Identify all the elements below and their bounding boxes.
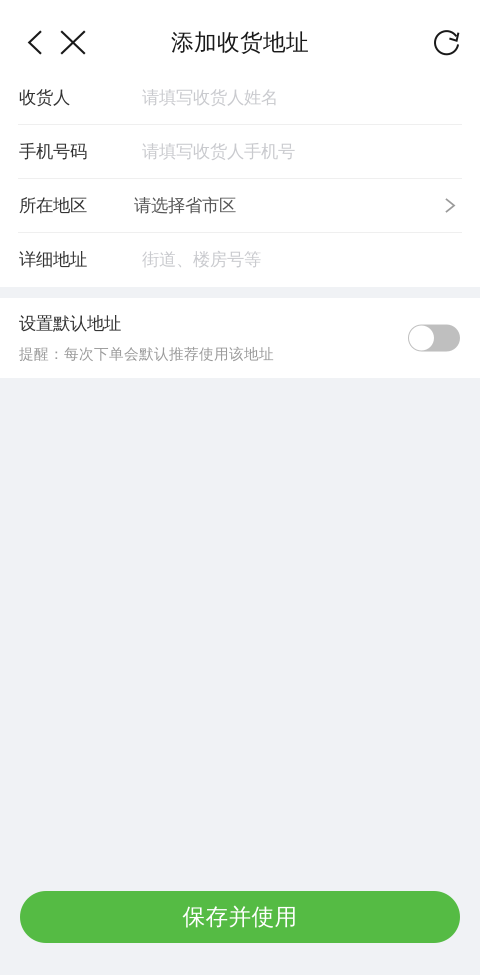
- button[interactable]: 保存并使用: [20, 891, 460, 943]
- staticText: 所在地区: [19, 195, 87, 216]
- button[interactable]: Close: [51, 17, 95, 67]
- button[interactable]: 所在地区: [0, 179, 480, 233]
- staticText: 请选择省市区: [134, 195, 236, 216]
- button[interactable]: 详细地址: [0, 233, 480, 287]
- staticText: 保存并使用: [182, 903, 297, 931]
- staticText: 设置默认地址: [19, 313, 121, 334]
- button[interactable]: 收货人: [0, 71, 480, 125]
- staticText: 添加收货地址: [171, 29, 309, 56]
- staticText: 请填写收货人手机号: [142, 141, 295, 162]
- button[interactable]: Back: [19, 17, 51, 67]
- staticText: 街道、楼房号等: [142, 249, 261, 270]
- staticText: 提醒：每次下单会默认推荐使用该地址: [19, 345, 274, 363]
- staticText: 详细地址: [19, 249, 87, 270]
- button[interactable]: 手机号码: [0, 125, 480, 179]
- button[interactable]: Refresh: [425, 17, 469, 67]
- staticText: 收货人: [19, 87, 70, 108]
- staticText: 手机号码: [19, 141, 87, 162]
- button[interactable]: 设置默认地址: [0, 298, 480, 378]
- staticText: 请填写收货人姓名: [142, 87, 278, 108]
